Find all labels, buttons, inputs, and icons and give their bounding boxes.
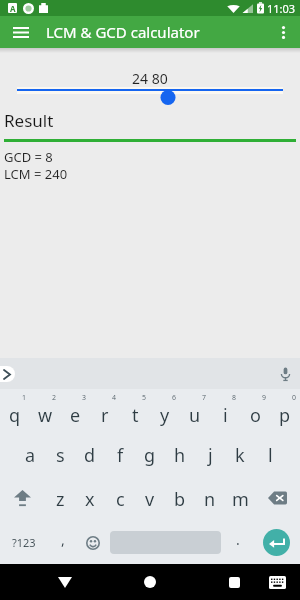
button[interactable]: Backspace — [255, 477, 300, 521]
staticText: 24 80 — [132, 69, 168, 88]
button[interactable]: m — [225, 477, 255, 521]
staticText: s — [56, 443, 65, 468]
staticText: , — [61, 530, 65, 549]
button[interactable]: Comma — [48, 521, 78, 564]
button[interactable]: f — [105, 433, 135, 477]
button[interactable]: x — [75, 477, 105, 521]
staticText: ?123 — [12, 535, 36, 550]
button[interactable]: n — [195, 477, 225, 521]
button[interactable]: b — [165, 477, 195, 521]
button[interactable]: s — [45, 433, 75, 477]
staticText: a — [25, 443, 36, 468]
staticText: z — [56, 487, 65, 512]
staticText: e — [70, 403, 81, 428]
button[interactable]: 2 — [30, 389, 60, 433]
staticText: o — [250, 403, 261, 428]
staticText: p — [279, 403, 291, 428]
staticText: 0 — [292, 393, 297, 403]
button[interactable]: c — [105, 477, 135, 521]
button[interactable]: 7 — [180, 389, 210, 433]
staticText: g — [144, 443, 156, 468]
button[interactable]: v — [135, 477, 165, 521]
button[interactable]: Emoji — [78, 521, 108, 564]
button[interactable]: k — [225, 433, 255, 477]
staticText: LCM = 240 — [4, 165, 68, 183]
staticText: 3 — [82, 393, 87, 403]
button[interactable]: 3 — [60, 389, 90, 433]
staticText: u — [189, 403, 201, 428]
button[interactable]: 9 — [240, 389, 270, 433]
staticText: 5 — [142, 393, 147, 403]
button[interactable]: 5 — [120, 389, 150, 433]
button[interactable]: l — [255, 433, 285, 477]
button[interactable]: Voice input — [270, 358, 300, 389]
button[interactable]: Shift — [0, 477, 45, 521]
staticText: 4 — [112, 393, 117, 403]
staticText: q — [9, 403, 21, 428]
staticText: v — [145, 487, 155, 512]
staticText: y — [160, 403, 170, 428]
button[interactable]: g — [135, 433, 165, 477]
button[interactable]: Back — [44, 564, 86, 600]
staticText: m — [232, 487, 249, 512]
staticText: Result — [4, 109, 54, 132]
staticText: 6 — [172, 393, 177, 403]
button[interactable]: j — [195, 433, 225, 477]
button[interactable]: More options — [266, 16, 300, 48]
button[interactable]: Expand suggestions — [0, 366, 15, 382]
staticText: 9 — [262, 393, 267, 403]
button[interactable]: 1 — [0, 389, 30, 433]
staticText: l — [268, 443, 273, 468]
button[interactable]: a — [15, 433, 45, 477]
staticText: LCM & GCD calculator — [46, 22, 200, 42]
button[interactable]: Navigation menu — [0, 16, 41, 48]
button[interactable]: 8 — [210, 389, 240, 433]
staticText: n — [204, 487, 216, 512]
staticText: 11:03 — [267, 1, 296, 16]
staticText: i — [223, 403, 228, 428]
staticText: . — [236, 530, 240, 549]
staticText: A — [10, 3, 16, 13]
button[interactable]: z — [45, 477, 75, 521]
staticText: w — [38, 403, 53, 428]
staticText: c — [116, 487, 125, 512]
staticText: k — [235, 443, 245, 468]
button[interactable]: 6 — [150, 389, 180, 433]
button[interactable]: Enter — [253, 521, 300, 564]
staticText: d — [84, 443, 96, 468]
staticText: 8 — [232, 393, 237, 403]
button[interactable]: Switch keyboard — [258, 564, 296, 600]
staticText: h — [174, 443, 186, 468]
staticText: GCD = 8 — [4, 148, 53, 166]
staticText: j — [208, 443, 213, 468]
staticText: t — [132, 403, 139, 428]
button[interactable]: Recent apps — [213, 564, 255, 600]
staticText: 7 — [202, 393, 207, 403]
staticText: r — [101, 403, 109, 428]
staticText: x — [85, 487, 95, 512]
staticText: 2 — [52, 393, 57, 403]
button[interactable]: Home — [129, 564, 171, 600]
button[interactable]: ?123 — [0, 521, 48, 564]
button[interactable]: 4 — [90, 389, 120, 433]
staticText: b — [174, 487, 186, 512]
button[interactable]: Period — [223, 521, 253, 564]
button[interactable]: 0 — [270, 389, 300, 433]
staticText: f — [117, 443, 124, 468]
button[interactable]: h — [165, 433, 195, 477]
button[interactable]: d — [75, 433, 105, 477]
staticText: 1 — [22, 393, 27, 403]
